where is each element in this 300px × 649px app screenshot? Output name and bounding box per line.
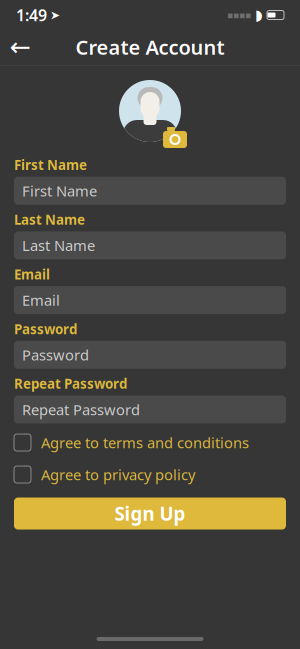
button[interactable]: Agree to terms and conditions: [14, 429, 286, 455]
button[interactable]: Password: [14, 341, 286, 369]
button[interactable]: Back: [0, 30, 40, 64]
staticText: Password: [22, 345, 89, 365]
button[interactable]: Last Name: [14, 231, 286, 259]
button[interactable]: Sign Up: [14, 497, 286, 529]
staticText: ▪▪▪▪: [227, 10, 251, 20]
button[interactable]: Change profile photo: [113, 66, 187, 154]
staticText: Repeat Password: [22, 400, 140, 419]
staticText: Agree to terms and conditions: [41, 433, 249, 452]
staticText: Email: [22, 290, 60, 310]
staticText: ◗: [255, 7, 263, 23]
staticText: Last Name: [14, 211, 85, 228]
staticText: Create Account: [75, 34, 224, 60]
staticText: ➤: [50, 8, 60, 22]
staticText: Sign Up: [114, 501, 185, 526]
button[interactable]: Agree to privacy policy: [14, 461, 286, 487]
staticText: Email: [14, 265, 50, 283]
staticText: 1:49: [16, 4, 47, 26]
staticText: Repeat Password: [14, 375, 127, 392]
staticText: First Name: [14, 156, 87, 174]
button[interactable]: Repeat Password: [14, 395, 286, 423]
staticText: ←: [9, 33, 30, 61]
staticText: First Name: [22, 181, 97, 200]
staticText: Last Name: [22, 236, 95, 255]
button[interactable]: First Name: [14, 177, 286, 205]
staticText: Password: [14, 320, 77, 338]
staticText: Agree to privacy policy: [41, 465, 195, 484]
button[interactable]: Email: [14, 286, 286, 314]
